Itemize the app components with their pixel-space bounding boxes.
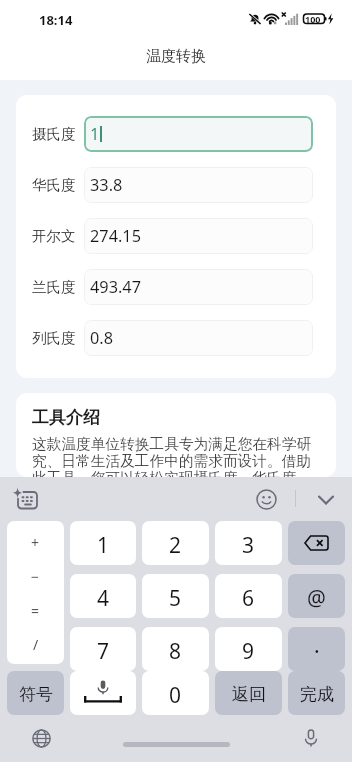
staticText: 0 [169,681,182,710]
button[interactable]: Space [70,671,136,715]
staticText: 列氏度 [32,329,84,347]
button[interactable]: Emoji [252,485,280,513]
button[interactable]: Operators [7,521,64,664]
button[interactable]: 7 [70,627,136,671]
staticText: 这款温度单位转换工具专为满足您在科学研究、日常生活及工作中的需求而设计。借助此工… [32,435,322,477]
button[interactable]: Change language [26,723,56,753]
button[interactable]: AI keyboard [9,485,43,513]
staticText: 5 [169,584,182,613]
staticText: 0.8 [90,327,114,349]
button[interactable]: 返回 [215,671,282,715]
staticText: 1 [90,123,100,145]
staticText: 493.47 [90,276,141,298]
button[interactable]: 5 [142,574,209,618]
staticText: 274.15 [90,225,141,247]
button[interactable]: 1 [70,521,136,565]
staticText: 1 [97,531,110,560]
staticText: 6 [242,584,255,613]
button[interactable]: 0 [142,671,209,715]
staticText: / [33,635,39,654]
staticText: 温度转换 [146,47,206,66]
button[interactable]: 完成 [288,671,345,715]
staticText: + [31,533,40,552]
staticText: 工具介绍 [32,407,100,428]
staticText: 华氏度 [32,176,84,194]
staticText: − [31,567,40,586]
staticText: 完成 [300,684,334,705]
staticText: 18:14 [39,11,73,29]
staticText: 符号 [19,684,53,705]
button[interactable]: 4 [70,574,136,618]
staticText: 9 [242,637,255,666]
button[interactable]: 8 [142,627,209,671]
staticText: 3 [242,531,255,560]
button[interactable]: 2 [142,521,209,565]
staticText: 8 [169,637,182,666]
staticText: = [31,601,40,620]
staticText: @ [307,584,326,613]
staticText: 兰氏度 [32,278,84,296]
button[interactable]: 274.15 [84,218,313,254]
button[interactable]: @ [288,574,345,618]
staticText: 返回 [232,684,266,705]
button[interactable]: 3 [215,521,282,565]
staticText: 开尔文 [32,227,84,245]
button[interactable]: 493.47 [84,269,313,305]
staticText: . [314,631,320,660]
button[interactable]: 符号 [7,671,64,715]
staticText: 100 [305,13,321,25]
staticText: 33.8 [90,174,123,196]
button[interactable]: Decimal point [288,627,345,671]
staticText: 7 [97,637,110,666]
button[interactable]: 0.8 [84,320,313,356]
button[interactable]: 1 [84,116,313,152]
button[interactable]: Voice input [296,723,326,753]
button[interactable]: Backspace [288,521,345,565]
staticText: 摄氏度 [32,125,84,143]
button[interactable]: 6 [215,574,282,618]
button[interactable]: 33.8 [84,167,313,203]
button[interactable]: Hide keyboard [312,485,340,513]
button[interactable]: 9 [215,627,282,671]
staticText: 4 [97,584,110,613]
staticText: 2 [169,531,182,560]
